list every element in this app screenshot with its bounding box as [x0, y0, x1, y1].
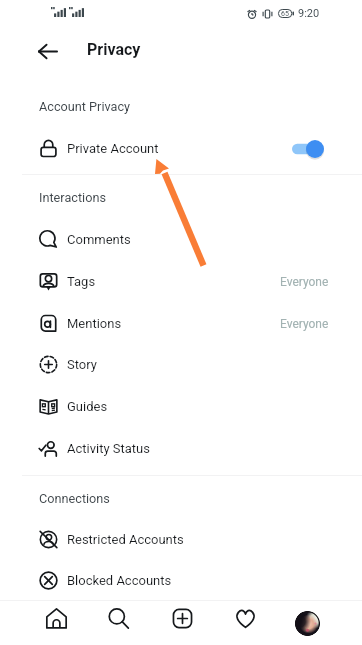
button[interactable]: Home — [39, 601, 73, 635]
button[interactable]: Activity Status — [0, 429, 362, 468]
button[interactable]: Private Account toggle — [292, 139, 324, 159]
button[interactable]: Activity — [228, 601, 262, 635]
button[interactable]: Restricted Accounts — [0, 520, 362, 559]
button[interactable]: Guides — [0, 387, 362, 426]
button[interactable]: Search — [101, 601, 135, 635]
staticText: Tags — [67, 274, 96, 289]
staticText: 65 — [281, 10, 289, 18]
button[interactable]: Profile — [290, 606, 324, 640]
button[interactable]: Story — [0, 345, 362, 384]
staticText: Privacy — [87, 40, 141, 59]
button[interactable]: Tags — [0, 262, 362, 301]
staticText: 9:20 — [298, 7, 320, 20]
staticText: Everyone — [280, 275, 329, 289]
staticText: Guides — [67, 399, 108, 414]
staticText: Private Account — [67, 141, 159, 156]
button[interactable]: Private Account — [0, 129, 362, 168]
staticText: Story — [67, 357, 97, 372]
staticText: Comments — [67, 232, 131, 247]
button[interactable]: Back — [31, 34, 65, 68]
staticText: Blocked Accounts — [67, 573, 172, 588]
staticText: Restricted Accounts — [67, 532, 184, 547]
staticText: Everyone — [280, 317, 329, 331]
button[interactable]: Mentions — [0, 304, 362, 343]
button[interactable]: Create — [165, 601, 199, 635]
button[interactable]: Blocked Accounts — [0, 561, 362, 600]
staticText: Connections — [39, 491, 110, 506]
button[interactable]: Comments — [0, 220, 362, 259]
staticText: Interactions — [39, 190, 106, 205]
staticText: Activity Status — [67, 441, 150, 456]
staticText: Mentions — [67, 316, 122, 331]
staticText: Account Privacy — [39, 99, 131, 114]
